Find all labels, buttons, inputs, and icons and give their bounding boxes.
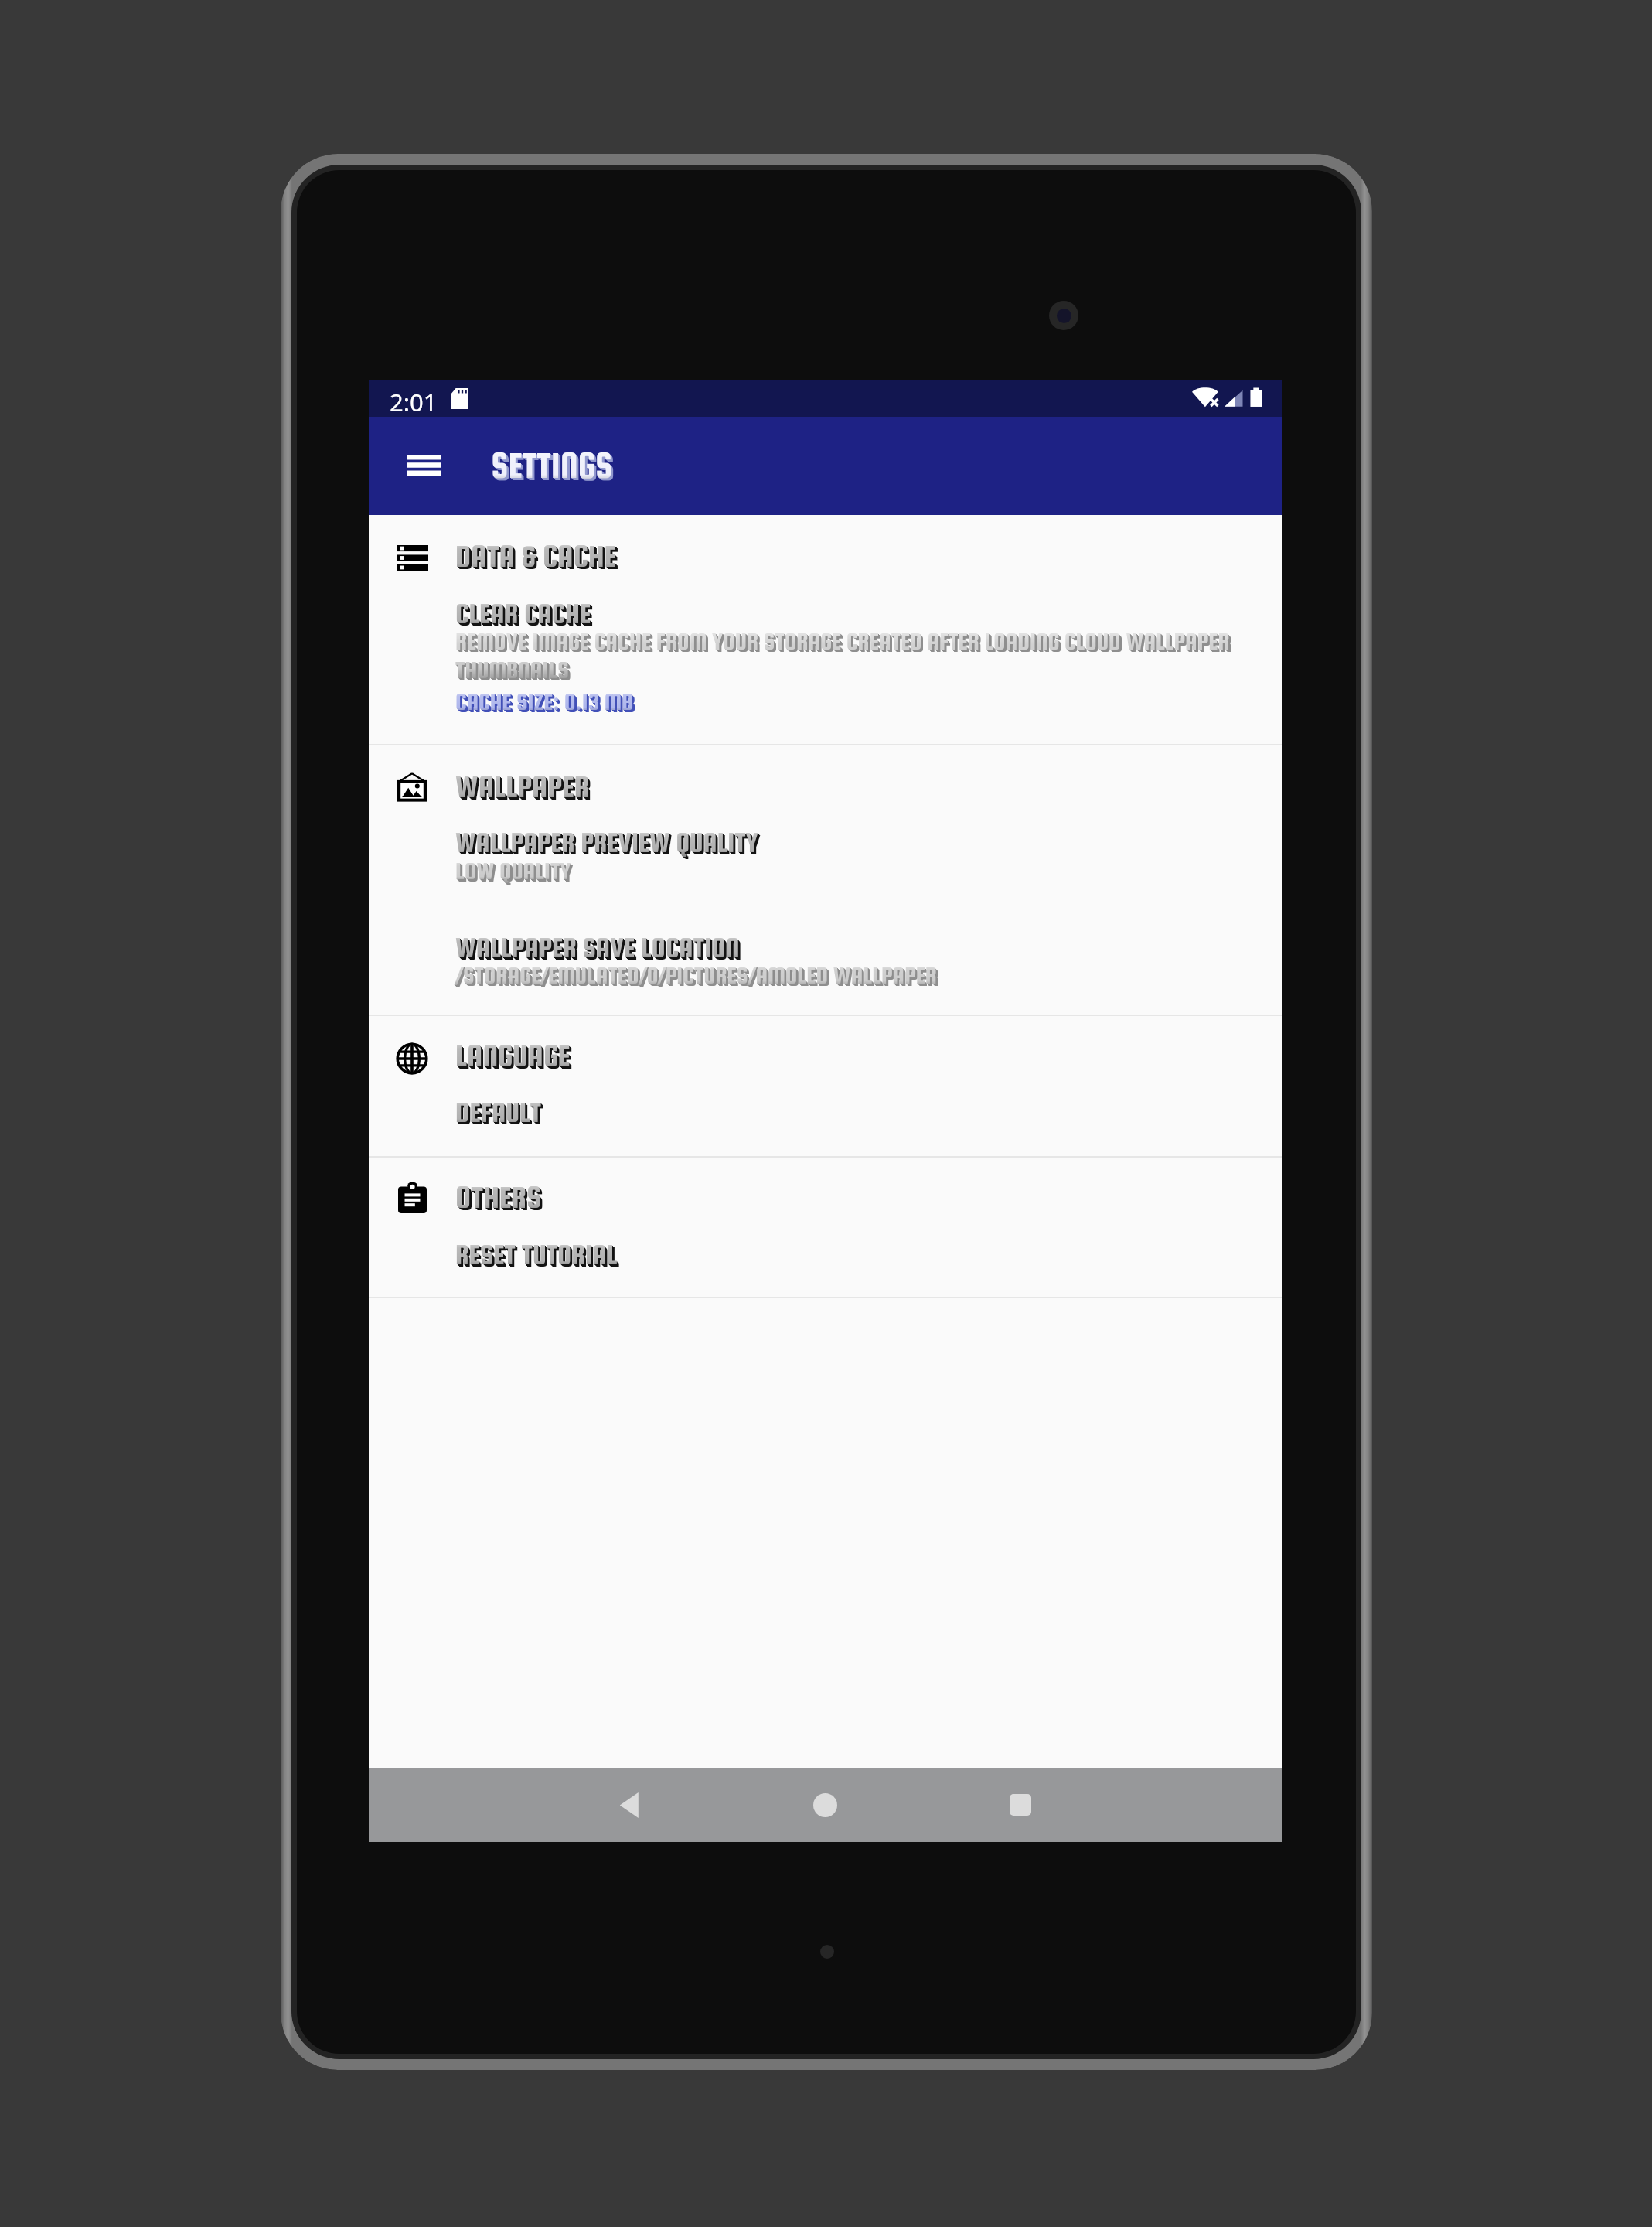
staticText: REMOVE IMAGE CACHE FROM YOUR STORAGE CRE… (455, 628, 1252, 683)
staticText: CACHE SIZE: 0.13 MB (455, 688, 634, 714)
staticText: DEFAULT (457, 1098, 543, 1129)
staticText: 2:01 (390, 386, 438, 418)
staticText: LOW QUALITY (457, 859, 573, 885)
staticText: OTHERS (455, 1180, 542, 1214)
staticText: WALLPAPER PREVIEW QUALITY (455, 827, 758, 858)
staticText: WALLPAPER (457, 771, 591, 805)
staticText: SETTINGS (492, 447, 615, 487)
staticText: DATA & CACHE (456, 540, 618, 574)
staticText: SETTINGS (493, 448, 615, 488)
staticText: OTHERS (458, 1182, 544, 1216)
staticText: OTHERS (456, 1181, 543, 1215)
staticText: RESET TUTORIAL (458, 1241, 620, 1272)
staticText: LOW QUALITY (456, 858, 572, 885)
staticText: REMOVE IMAGE CACHE FROM YOUR STORAGE CRE… (458, 630, 1254, 685)
staticText: LANGUAGE (455, 1038, 571, 1073)
staticText: CACHE SIZE: 0.13 MB (458, 691, 636, 717)
button[interactable]: Back (595, 1770, 665, 1840)
staticText: REMOVE IMAGE CACHE FROM YOUR STORAGE CRE… (456, 629, 1252, 684)
staticText: SETTINGS (491, 445, 613, 486)
button[interactable]: Home (790, 1770, 860, 1840)
staticText: WALLPAPER SAVE LOCATION (456, 933, 741, 963)
staticText: WALLPAPER (456, 770, 591, 804)
button[interactable]: RESET TUTORIAL (369, 1231, 1282, 1297)
staticText: /STORAGE/EMULATED/0/PICTURES/AMOLED WALL… (455, 962, 937, 988)
staticText: /STORAGE/EMULATED/0/PICTURES/AMOLED WALL… (457, 963, 938, 990)
staticText: DATA & CACHE (458, 541, 619, 575)
button[interactable]: Recent apps (986, 1770, 1055, 1840)
staticText: LANGUAGE (457, 1040, 572, 1074)
staticText: WALLPAPER SAVE LOCATION (458, 934, 742, 965)
staticText: REMOVE IMAGE CACHE FROM YOUR STORAGE CRE… (457, 629, 1253, 684)
staticText: SETTINGS (492, 446, 614, 486)
staticText: DEFAULT (458, 1099, 544, 1130)
staticText: /STORAGE/EMULATED/0/PICTURES/AMOLED WALL… (456, 963, 938, 989)
staticText: CLEAR CACHE (456, 599, 592, 629)
staticText: WALLPAPER SAVE LOCATION (457, 933, 741, 964)
staticText: CLEAR CACHE (455, 598, 591, 629)
staticText: OTHERS (457, 1182, 543, 1216)
staticText: WALLPAPER SAVE LOCATION (455, 932, 740, 963)
staticText: LOW QUALITY (455, 858, 571, 884)
button[interactable]: CLEAR CACHE (369, 589, 1282, 736)
staticText: LOW QUALITY (458, 860, 574, 886)
staticText: CACHE SIZE: 0.13 MB (456, 689, 635, 715)
staticText: DATA & CACHE (455, 539, 617, 573)
staticText: RESET TUTORIAL (456, 1240, 618, 1270)
button[interactable]: WALLPAPER PREVIEW QUALITY (369, 820, 1282, 909)
staticText: DATA & CACHE (457, 541, 618, 575)
button[interactable]: DEFAULT (369, 1089, 1282, 1154)
staticText: WALLPAPER (458, 772, 592, 806)
button[interactable]: WALLPAPER SAVE LOCATION (369, 924, 1282, 1013)
staticText: LANGUAGE (458, 1041, 573, 1075)
staticText: RESET TUTORIAL (455, 1239, 618, 1270)
staticText: LANGUAGE (456, 1039, 571, 1073)
staticText: CLEAR CACHE (457, 599, 593, 630)
staticText: CACHE SIZE: 0.13 MB (457, 690, 635, 716)
button[interactable]: Open navigation drawer (391, 438, 457, 493)
staticText: WALLPAPER PREVIEW QUALITY (458, 830, 761, 861)
staticText: DEFAULT (456, 1097, 543, 1128)
staticText: WALLPAPER PREVIEW QUALITY (457, 829, 760, 860)
staticText: WALLPAPER (455, 769, 590, 803)
staticText: WALLPAPER PREVIEW QUALITY (456, 828, 759, 859)
staticText: DEFAULT (455, 1096, 542, 1127)
staticText: RESET TUTORIAL (457, 1240, 619, 1271)
staticText: CLEAR CACHE (458, 600, 594, 631)
staticText: /STORAGE/EMULATED/0/PICTURES/AMOLED WALL… (458, 964, 939, 991)
